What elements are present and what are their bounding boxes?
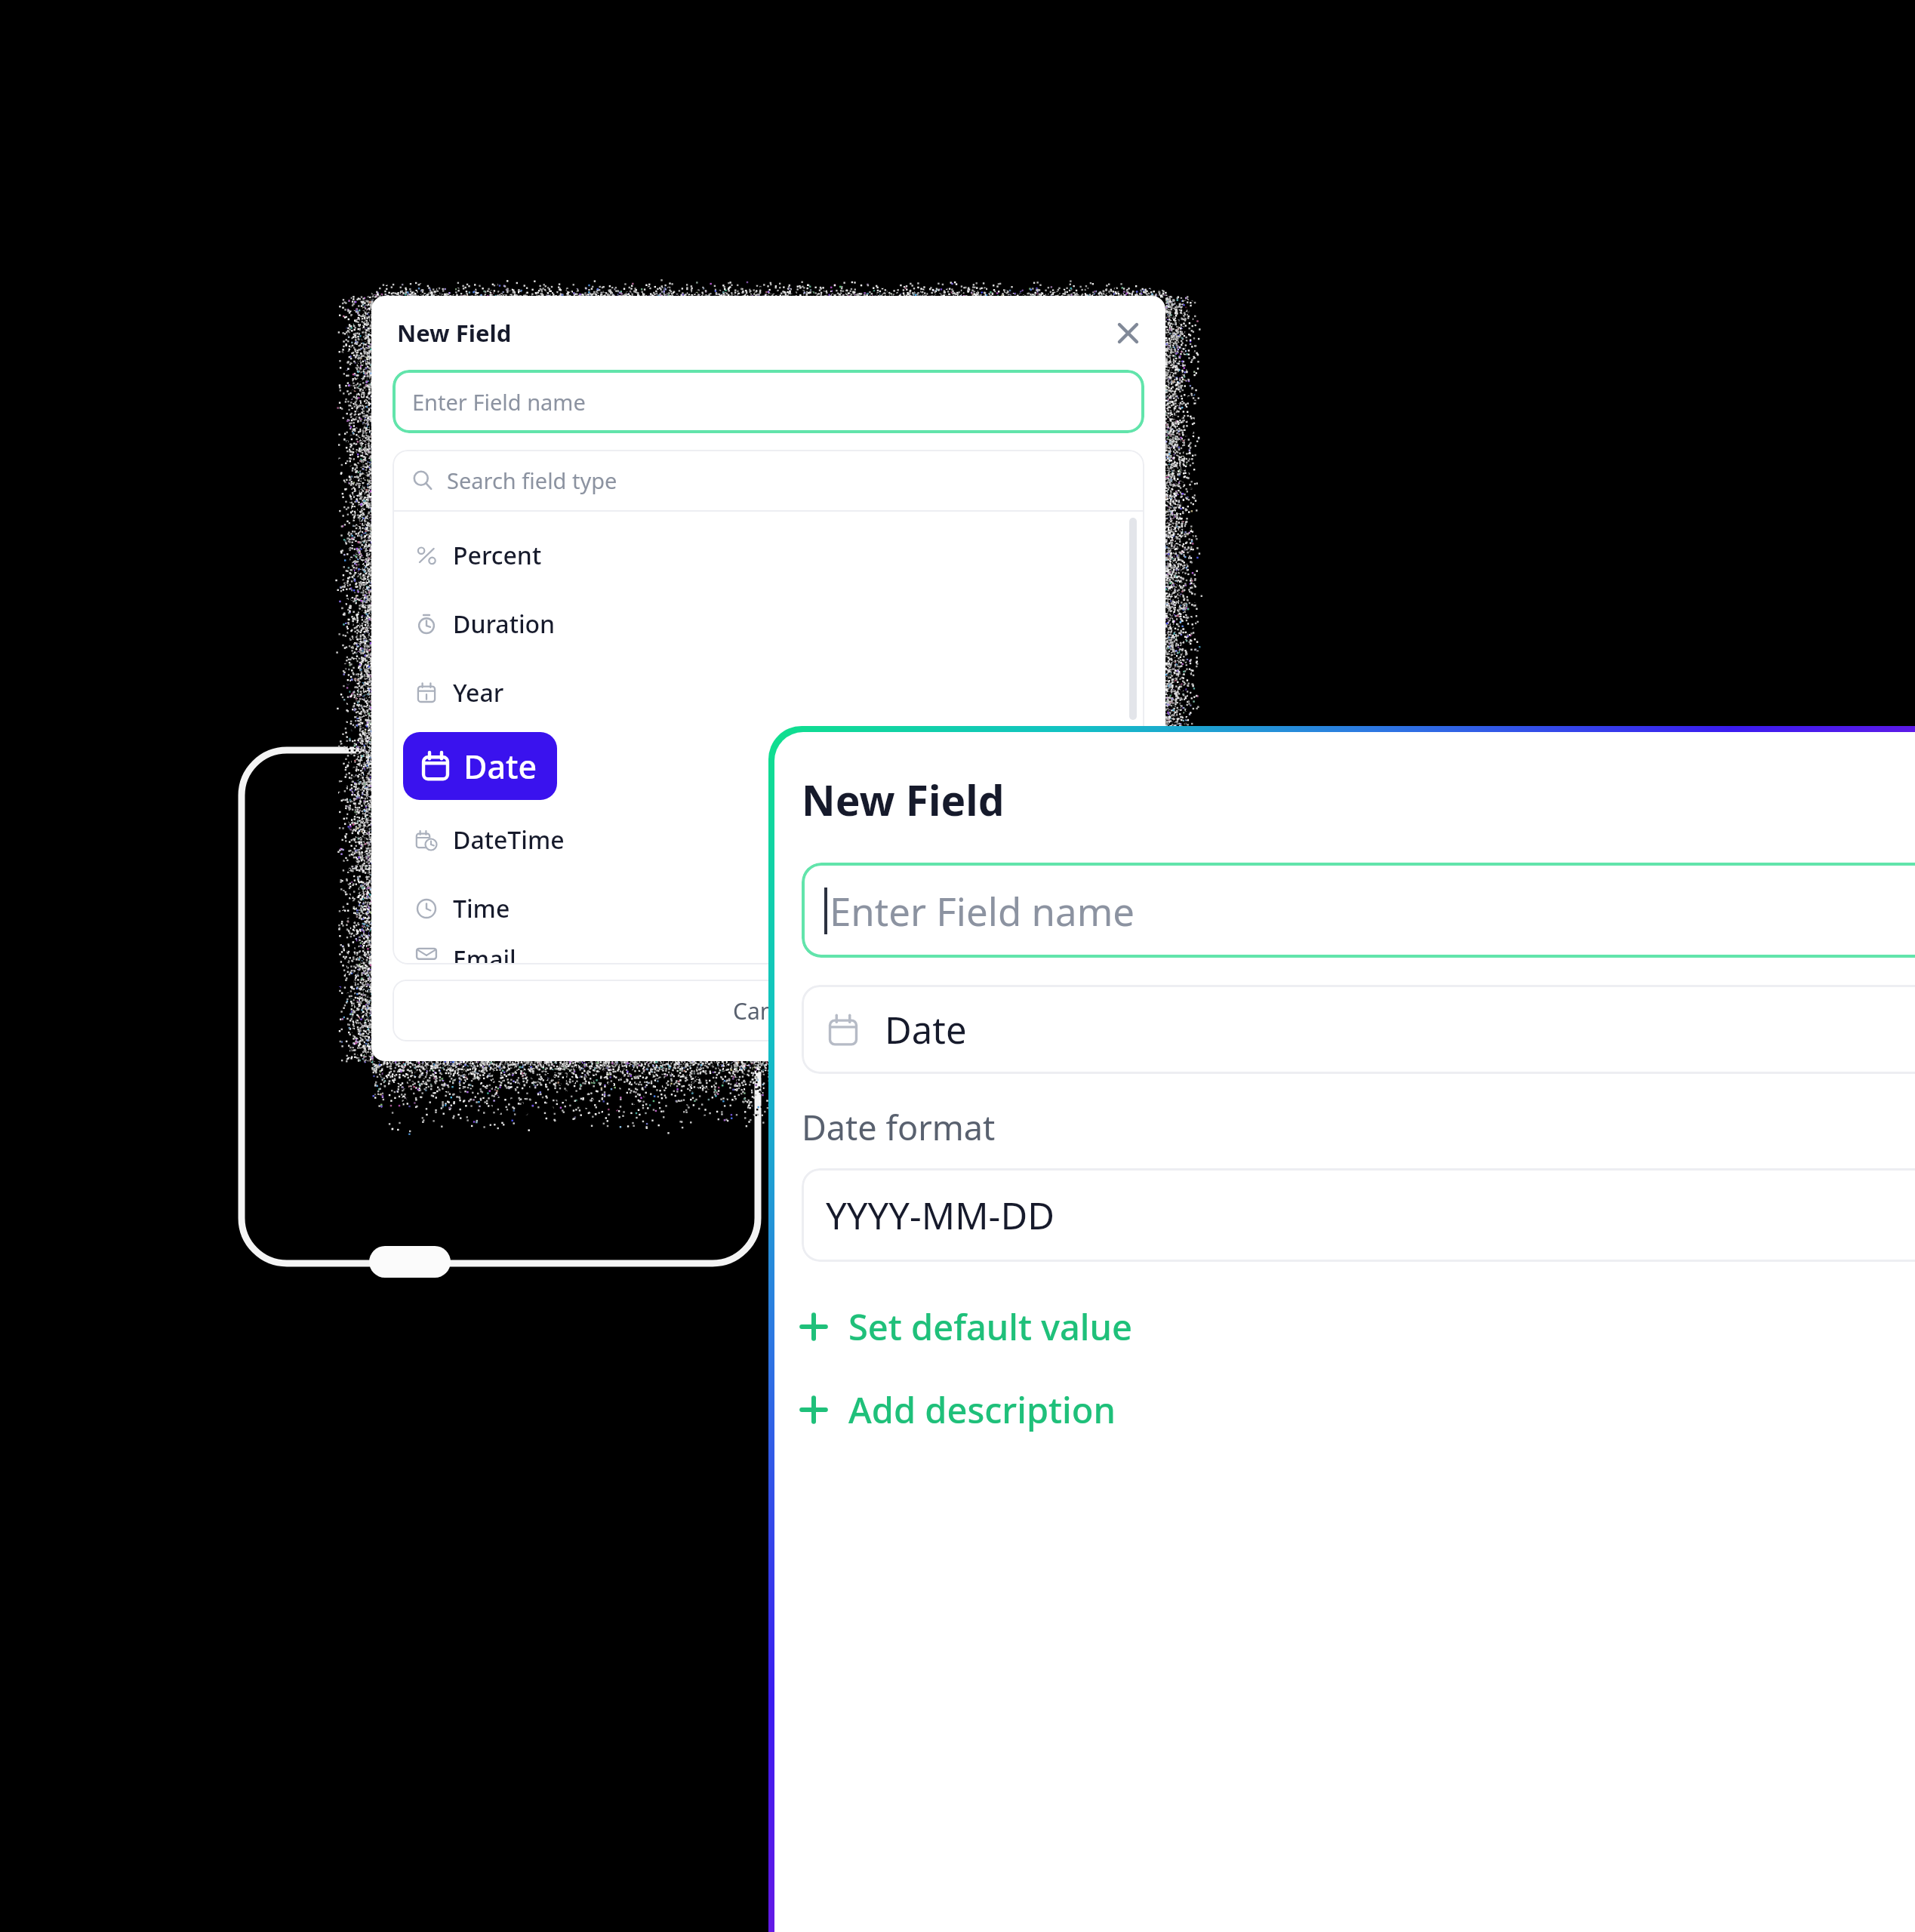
staticText: YYYY-MM-DD [826, 1190, 1054, 1241]
staticText: New Field [802, 771, 1005, 828]
button[interactable]: Enter Field name [802, 863, 1915, 958]
staticText: Year [453, 676, 504, 709]
staticText: Search field type [447, 466, 617, 495]
button[interactable]: DateTime [393, 805, 1144, 874]
staticText: Time [453, 892, 510, 925]
button[interactable]: Year [393, 658, 1144, 727]
button[interactable]: Search field type [393, 450, 1144, 510]
button[interactable]: Email [393, 943, 1144, 964]
button[interactable]: Set default value [796, 1297, 1132, 1357]
button[interactable]: Close [1108, 313, 1147, 352]
staticText: Duration [453, 608, 556, 641]
staticText: Date [885, 1004, 967, 1055]
button[interactable]: Add description [796, 1380, 1116, 1440]
button[interactable]: Time [393, 874, 1144, 943]
staticText: Date format [802, 1104, 996, 1150]
button[interactable]: Date [802, 985, 1915, 1074]
button[interactable]: Duration [393, 589, 1144, 658]
staticText: Enter Field name [830, 884, 1135, 937]
staticText: DateTime [453, 823, 565, 857]
staticText: Email [453, 943, 516, 964]
staticText: Percent [453, 539, 542, 572]
staticText: Enter Field name [412, 387, 586, 417]
staticText: Cancel [733, 995, 804, 1026]
button[interactable]: Enter Field name [393, 370, 1144, 433]
button[interactable]: YYYY-MM-DD [802, 1168, 1915, 1262]
button[interactable]: Percent [393, 521, 1144, 589]
staticText: Add description [848, 1386, 1116, 1434]
staticText: Date [463, 744, 537, 789]
staticText: New Field [397, 317, 512, 349]
staticText: Set default value [848, 1303, 1132, 1351]
button[interactable]: Date [403, 732, 557, 800]
button[interactable]: Cancel [393, 980, 1144, 1041]
